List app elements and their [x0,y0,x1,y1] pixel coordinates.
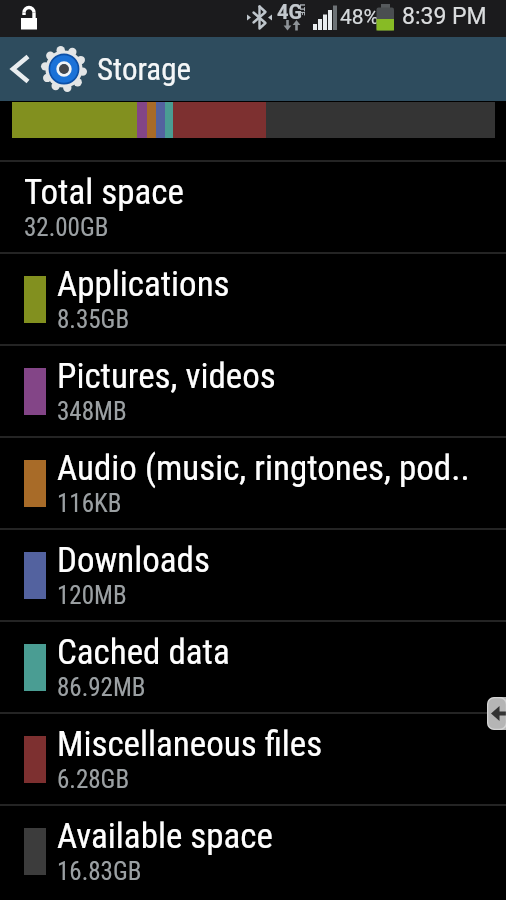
staticText: 6.28GB [57,765,130,794]
staticText: 48% [340,5,379,30]
button[interactable]: Available space [0,804,506,896]
button[interactable]: Audio (music, ringtones, pod.. [0,436,506,528]
button[interactable] [487,697,506,730]
staticText: Applications [57,264,230,305]
button[interactable]: Applications [0,252,506,344]
staticText: 86.92MB [57,673,146,702]
staticText: Available space [57,816,273,857]
staticText: 4G [277,0,303,23]
staticText: 348MB [57,397,127,426]
staticText: Pictures, videos [57,356,276,397]
staticText: Miscellaneous files [57,724,323,765]
staticText: 8:39 PM [402,3,487,30]
staticText: 16.83GB [57,857,142,886]
staticText: 8.35GB [57,305,130,334]
staticText: 116KB [57,489,122,518]
staticText: Downloads [57,540,210,581]
button[interactable]: Miscellaneous files [0,712,506,804]
button[interactable]: Storage [0,37,506,101]
staticText: Storage [97,51,192,87]
staticText: Total space [24,172,184,213]
button[interactable]: Pictures, videos [0,344,506,436]
staticText: Audio (music, ringtones, pod.. [57,448,470,489]
staticText: 32.00GB [24,213,109,242]
button[interactable]: Total space [0,160,506,252]
staticText: LTE [298,4,306,16]
button[interactable]: Downloads [0,528,506,620]
staticText: 120MB [57,581,127,610]
button[interactable]: Cached data [0,620,506,712]
staticText: Cached data [57,632,230,673]
